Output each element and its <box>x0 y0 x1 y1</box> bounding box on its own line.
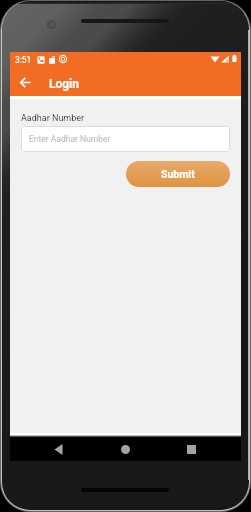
button[interactable]: Recents <box>179 437 203 461</box>
button[interactable]: Back <box>46 437 70 461</box>
button[interactable]: Home <box>113 437 137 461</box>
staticText: 3:51 <box>15 55 32 65</box>
staticText: Aadhar Number <box>21 113 85 124</box>
button[interactable]: Submit <box>126 161 230 187</box>
button[interactable]: Back <box>13 70 37 94</box>
staticText: Enter Aadhar Number <box>29 134 111 144</box>
staticText: Submit <box>161 168 195 180</box>
button[interactable]: Enter Aadhar Number <box>21 126 230 152</box>
staticText: Login <box>49 77 80 91</box>
